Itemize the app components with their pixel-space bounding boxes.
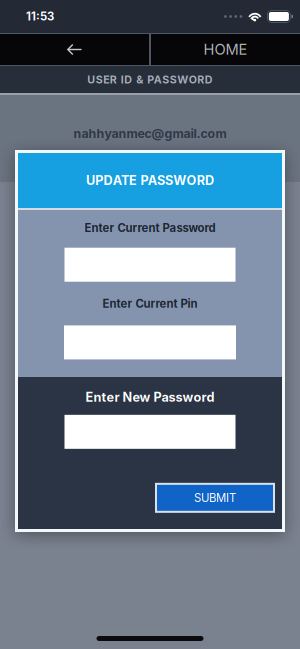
staticText: nahhyanmec@gmail.com bbox=[73, 126, 226, 141]
button[interactable]: Enter New Password bbox=[64, 415, 235, 449]
staticText: Enter Current Pin bbox=[102, 297, 197, 310]
button[interactable]: Enter Current Pin bbox=[64, 325, 236, 359]
staticText: 11:53 bbox=[26, 10, 54, 23]
button[interactable]: HOME bbox=[151, 34, 300, 65]
staticText: USER ID & PASSWORD bbox=[87, 73, 213, 86]
staticText: HOME bbox=[203, 41, 247, 58]
button[interactable]: Enter Current Password bbox=[64, 248, 235, 282]
button[interactable]: Back bbox=[0, 34, 149, 65]
staticText: Enter Current Password bbox=[84, 221, 215, 235]
button[interactable]: SUBMIT bbox=[155, 483, 275, 513]
staticText: Enter New Password bbox=[85, 389, 214, 405]
staticText: UPDATE PASSWORD bbox=[86, 173, 214, 188]
staticText: SUBMIT bbox=[194, 491, 236, 505]
